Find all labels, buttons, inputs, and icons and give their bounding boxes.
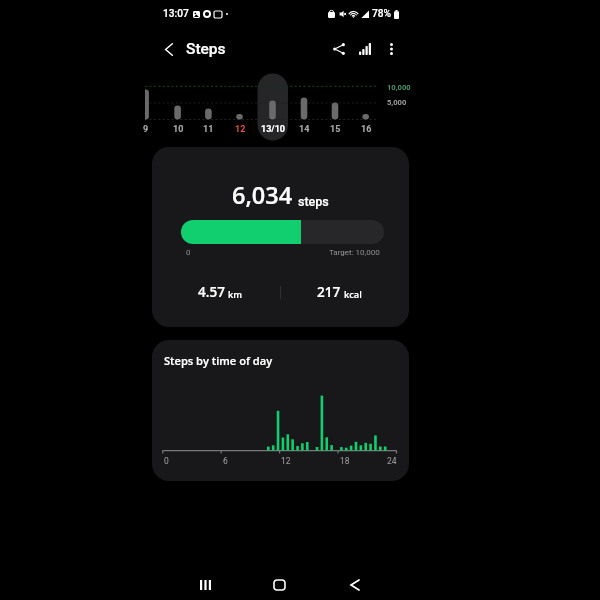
- button[interactable]: Back: [317, 570, 392, 600]
- staticText: 24: [387, 456, 397, 466]
- staticText: 10: [173, 124, 184, 135]
- staticText: 15: [330, 124, 341, 135]
- button[interactable]: 16: [352, 122, 380, 136]
- staticText: 217: [317, 283, 341, 301]
- staticText: 13:07: [163, 8, 189, 20]
- button[interactable]: 12: [226, 122, 254, 136]
- staticText: Target: 10,000: [329, 248, 380, 257]
- staticText: km: [228, 288, 243, 301]
- button[interactable]: Home: [242, 570, 317, 600]
- staticText: 18: [340, 456, 350, 466]
- button[interactable]: View chart: [353, 37, 377, 61]
- staticText: 9: [143, 124, 149, 135]
- staticText: steps: [298, 194, 329, 209]
- button[interactable]: Navigate up: [157, 37, 181, 61]
- button[interactable]: 6,034: [152, 147, 409, 327]
- staticText: 13/10: [261, 124, 285, 135]
- staticText: 12: [235, 124, 246, 135]
- staticText: Steps by time of day: [164, 353, 273, 368]
- staticText: 14: [299, 124, 310, 135]
- staticText: 11: [203, 124, 214, 135]
- staticText: 0: [164, 456, 169, 466]
- staticText: 16: [361, 124, 372, 135]
- staticText: 0: [186, 248, 191, 257]
- button[interactable]: 15: [321, 122, 349, 136]
- staticText: 5,000: [387, 98, 407, 107]
- staticText: 12: [281, 456, 291, 466]
- button[interactable]: More options: [379, 37, 403, 61]
- button[interactable]: 9: [132, 122, 160, 136]
- staticText: 6,034: [232, 179, 293, 211]
- button[interactable]: [181, 220, 384, 244]
- staticText: 10,000: [387, 83, 411, 92]
- button[interactable]: Steps by time of day: [152, 340, 409, 481]
- staticText: 6: [223, 456, 228, 466]
- button[interactable]: Share: [327, 37, 351, 61]
- button[interactable]: 4.57: [152, 279, 280, 305]
- staticText: kcal: [344, 288, 362, 301]
- button[interactable]: Recent apps: [168, 570, 242, 600]
- staticText: Steps: [186, 40, 226, 58]
- staticText: 78%: [372, 8, 392, 20]
- button[interactable]: 14: [290, 122, 318, 136]
- button[interactable]: 13/10: [259, 122, 287, 136]
- button[interactable]: 217: [281, 279, 409, 305]
- button[interactable]: 11: [194, 122, 222, 136]
- staticText: 4.57: [198, 283, 225, 301]
- button[interactable]: 10: [164, 122, 192, 136]
